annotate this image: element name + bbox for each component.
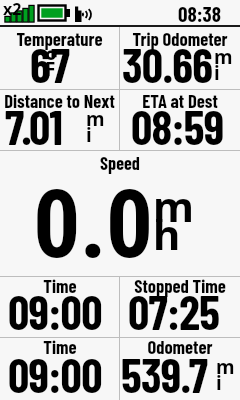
staticText: 07:25 xyxy=(128,283,220,339)
staticText: 539.7 xyxy=(121,346,208,400)
staticText: i xyxy=(214,60,220,86)
staticText: Distance to Next xyxy=(4,89,115,111)
staticText: Temperature xyxy=(16,27,103,49)
staticText: ° xyxy=(45,41,57,79)
button[interactable]: Time xyxy=(0,277,119,337)
staticText: Time xyxy=(43,335,77,357)
button[interactable]: Distance to Next xyxy=(0,90,119,150)
staticText: m xyxy=(214,44,233,70)
staticText: m xyxy=(86,106,105,132)
staticText: 30.66 xyxy=(122,36,213,92)
staticText: m xyxy=(216,354,235,380)
button[interactable]: Temperature xyxy=(0,27,119,89)
staticText: 09:00 xyxy=(8,283,102,339)
staticText: 7.01 xyxy=(5,98,63,154)
staticText: Trip Odometer xyxy=(132,27,228,49)
button[interactable]: Speed xyxy=(0,151,240,276)
button[interactable]: ETA at Dest xyxy=(120,90,240,150)
staticText: Odometer xyxy=(147,335,213,357)
staticText: x2 xyxy=(3,0,22,20)
staticText: 67 xyxy=(30,36,70,92)
staticText: 09:00 xyxy=(8,346,102,400)
staticText: Time xyxy=(43,274,77,296)
staticText: 08:38 xyxy=(178,1,221,26)
staticText: Speed xyxy=(100,152,140,174)
staticText: Stopped Time xyxy=(134,274,226,296)
button[interactable]: Odometer xyxy=(120,338,240,400)
staticText: i xyxy=(86,122,92,148)
staticText: m xyxy=(153,177,194,234)
staticText: ETA at Dest xyxy=(142,89,218,111)
button[interactable]: Stopped Time xyxy=(120,277,240,337)
staticText: i xyxy=(216,370,222,396)
button[interactable]: Trip Odometer xyxy=(120,27,240,89)
staticText: 08:59 xyxy=(131,98,224,154)
staticText: F xyxy=(45,56,56,82)
staticText: 0.0 xyxy=(33,170,153,280)
other: Signal, battery and phone status xyxy=(0,0,110,25)
staticText: h xyxy=(153,205,181,262)
button[interactable]: Time xyxy=(0,338,119,400)
